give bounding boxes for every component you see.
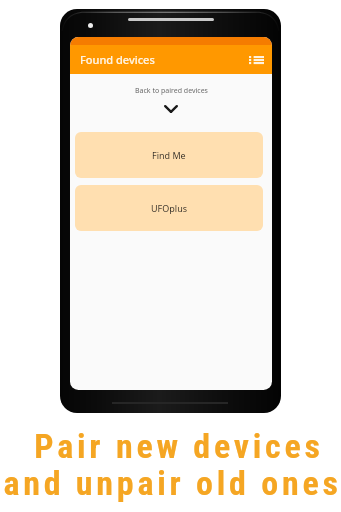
staticText: Find Me (152, 149, 186, 161)
staticText: UFOplus (151, 202, 188, 214)
staticText: Back to paired devices (135, 86, 208, 96)
staticText: Pair new devices (34, 426, 324, 466)
staticText: and unpair old ones (3, 463, 341, 503)
button[interactable]: Back to paired devices (70, 86, 272, 113)
staticText: Found devices (80, 52, 155, 67)
button[interactable]: Menu (245, 49, 267, 71)
button[interactable]: UFOplus (75, 185, 263, 231)
button[interactable]: Find Me (75, 132, 263, 178)
